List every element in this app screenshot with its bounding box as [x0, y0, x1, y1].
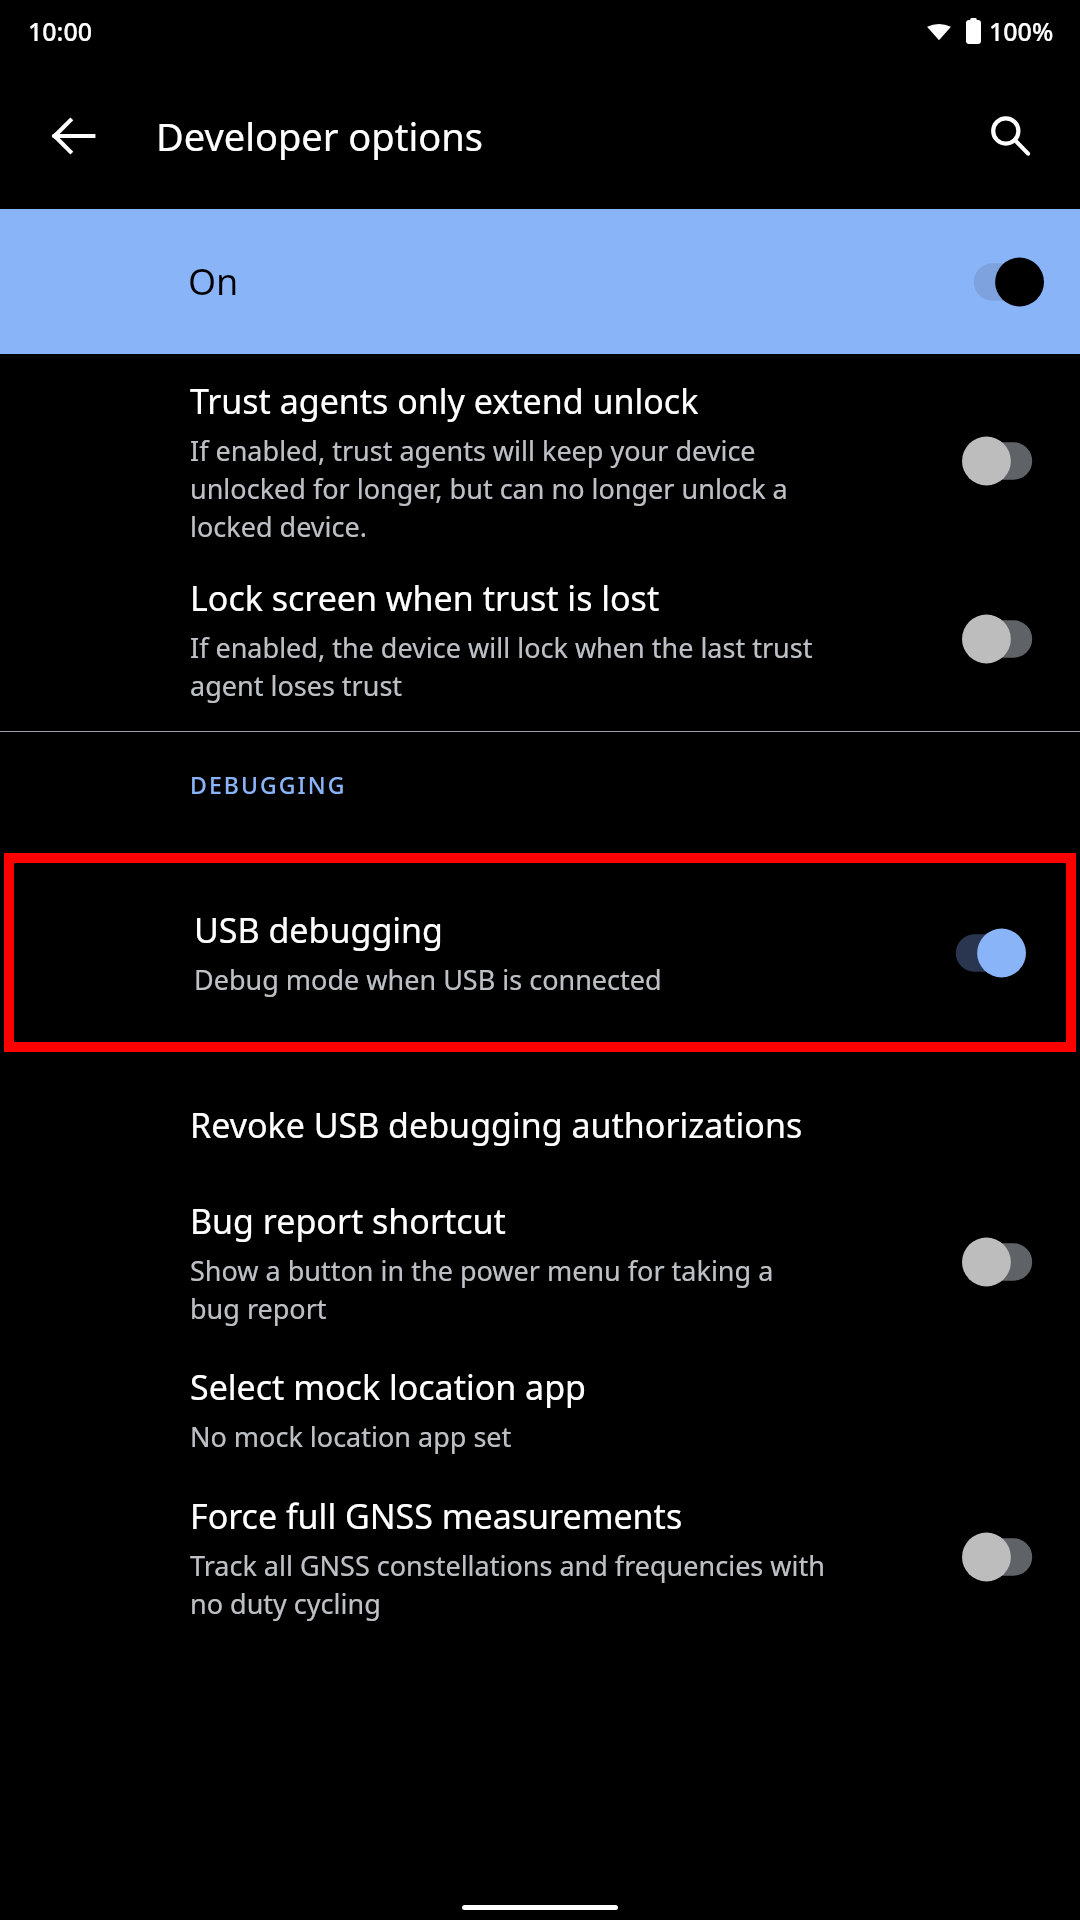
button[interactable]: Trust agents only extend unlock — [0, 363, 1080, 559]
staticText: Trust agents only extend unlock — [190, 378, 699, 424]
staticText: Revoke USB debugging authorizations — [190, 1102, 803, 1148]
button[interactable]: Bug report shortcut — [0, 1182, 1080, 1342]
staticText: Show a button in the power menu for taki… — [190, 1252, 830, 1327]
staticText: If enabled, the device will lock when th… — [190, 629, 830, 704]
staticText: Force full GNSS measurements — [190, 1493, 683, 1539]
staticText: Select mock location app — [190, 1364, 586, 1410]
button[interactable]: Revoke USB debugging authorizations — [0, 1067, 1080, 1182]
button[interactable]: Search — [962, 88, 1058, 184]
staticText: Bug report shortcut — [190, 1198, 506, 1244]
staticText: DEBUGGING — [190, 769, 347, 800]
staticText: 10:00 — [28, 14, 93, 48]
staticText: Lock screen when trust is lost — [190, 575, 660, 621]
staticText: Track all GNSS constellations and freque… — [190, 1547, 830, 1622]
staticText: On — [188, 257, 239, 306]
button[interactable]: On — [0, 209, 1080, 354]
staticText: 100% — [989, 14, 1054, 48]
staticText: Debug mode when USB is connected — [194, 961, 662, 998]
staticText: Developer options — [156, 110, 483, 162]
button[interactable]: Select mock location app — [0, 1342, 1080, 1477]
staticText: No mock location app set — [190, 1418, 512, 1455]
staticText: USB debugging — [194, 907, 443, 953]
staticText: If enabled, trust agents will keep your … — [190, 432, 830, 545]
button[interactable]: Force full GNSS measurements — [0, 1477, 1080, 1637]
button[interactable]: Lock screen when trust is lost — [0, 559, 1080, 719]
button[interactable]: USB debugging — [14, 863, 1066, 1042]
button[interactable]: Back — [26, 88, 122, 184]
